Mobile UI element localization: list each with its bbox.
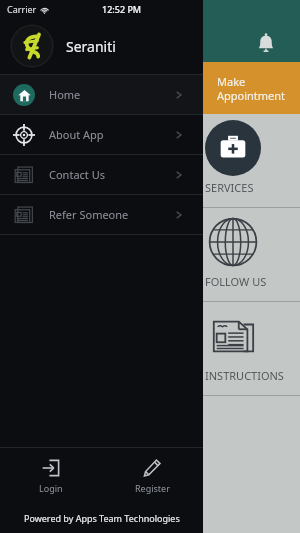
staticText: About App — [49, 127, 104, 142]
staticText: 12:52 PM — [102, 3, 142, 15]
button[interactable]: Register — [101, 448, 203, 503]
button[interactable]: Contact Us — [0, 155, 203, 194]
button[interactable]: SERVICES — [203, 114, 300, 207]
staticText: Register — [135, 482, 170, 494]
staticText: Carrier — [7, 3, 37, 15]
staticText: Refer Someone — [49, 207, 129, 222]
staticText: FOLLOW US — [205, 274, 267, 289]
button[interactable]: Login — [0, 448, 101, 503]
staticText: Contact Us — [49, 167, 105, 182]
button[interactable]: Notifications — [254, 32, 278, 56]
button[interactable]: FOLLOW US — [203, 208, 300, 301]
button[interactable]: Make Appointment — [203, 62, 300, 114]
staticText: Login — [39, 482, 63, 494]
button[interactable]: About App — [0, 115, 203, 154]
button[interactable]: Refer Someone — [0, 195, 203, 234]
staticText: Make Appointment — [217, 74, 286, 103]
staticText: SERVICES — [205, 180, 254, 195]
button[interactable]: INSTRUCTIONS — [203, 302, 300, 395]
staticText: Seraniti — [66, 37, 116, 56]
button[interactable]: Home — [0, 75, 203, 114]
staticText: Powered by Apps Team Technologies — [24, 512, 180, 524]
staticText: Home — [49, 87, 81, 102]
staticText: INSTRUCTIONS — [205, 368, 284, 383]
